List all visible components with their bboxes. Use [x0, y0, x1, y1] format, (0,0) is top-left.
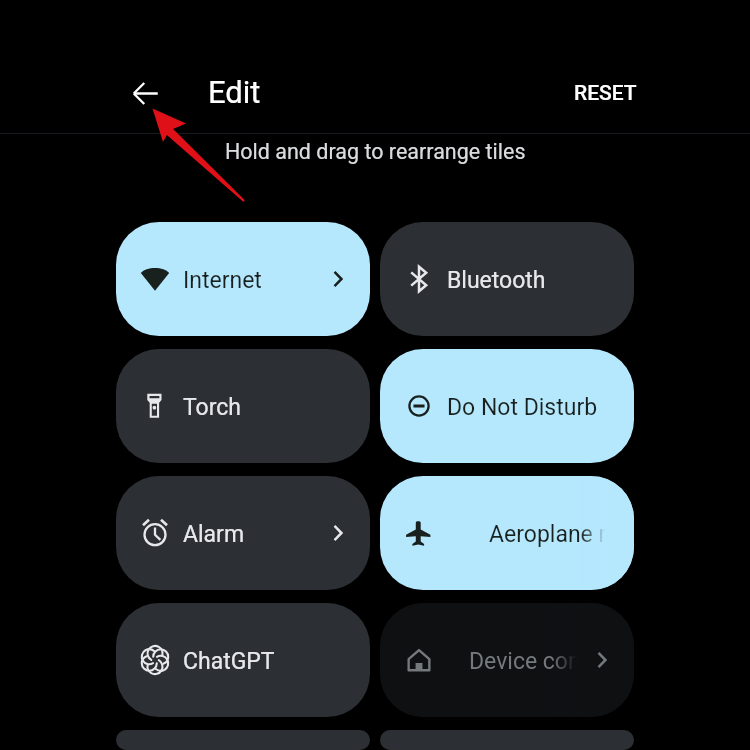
staticText: Do Not Disturb — [447, 394, 598, 421]
button[interactable]: Torch — [116, 349, 370, 463]
staticText: Edit — [208, 74, 261, 110]
button[interactable]: Internet — [116, 222, 370, 336]
button[interactable]: RESET — [560, 70, 651, 117]
staticText: Hold and drag to rearrange tiles — [225, 139, 526, 164]
button[interactable]: Aeroplane mode — [380, 476, 634, 590]
button[interactable]: ChatGPT — [116, 603, 370, 717]
button[interactable]: Alarm — [116, 476, 370, 590]
staticText: RESET — [574, 81, 637, 106]
staticText: Internet — [183, 267, 262, 294]
button[interactable]: Do Not Disturb — [380, 349, 634, 463]
button[interactable]: Back — [121, 69, 169, 117]
button[interactable]: Device controls — [380, 603, 634, 717]
button[interactable] — [380, 730, 634, 750]
button[interactable]: Bluetooth — [380, 222, 634, 336]
button[interactable] — [116, 730, 370, 750]
staticText: Alarm — [183, 521, 245, 548]
staticText: Device controls — [469, 648, 627, 675]
staticText: Torch — [183, 394, 242, 421]
staticText: Bluetooth — [447, 267, 546, 294]
staticText: ChatGPT — [183, 648, 275, 675]
staticText: Aeroplane mode — [489, 521, 634, 548]
